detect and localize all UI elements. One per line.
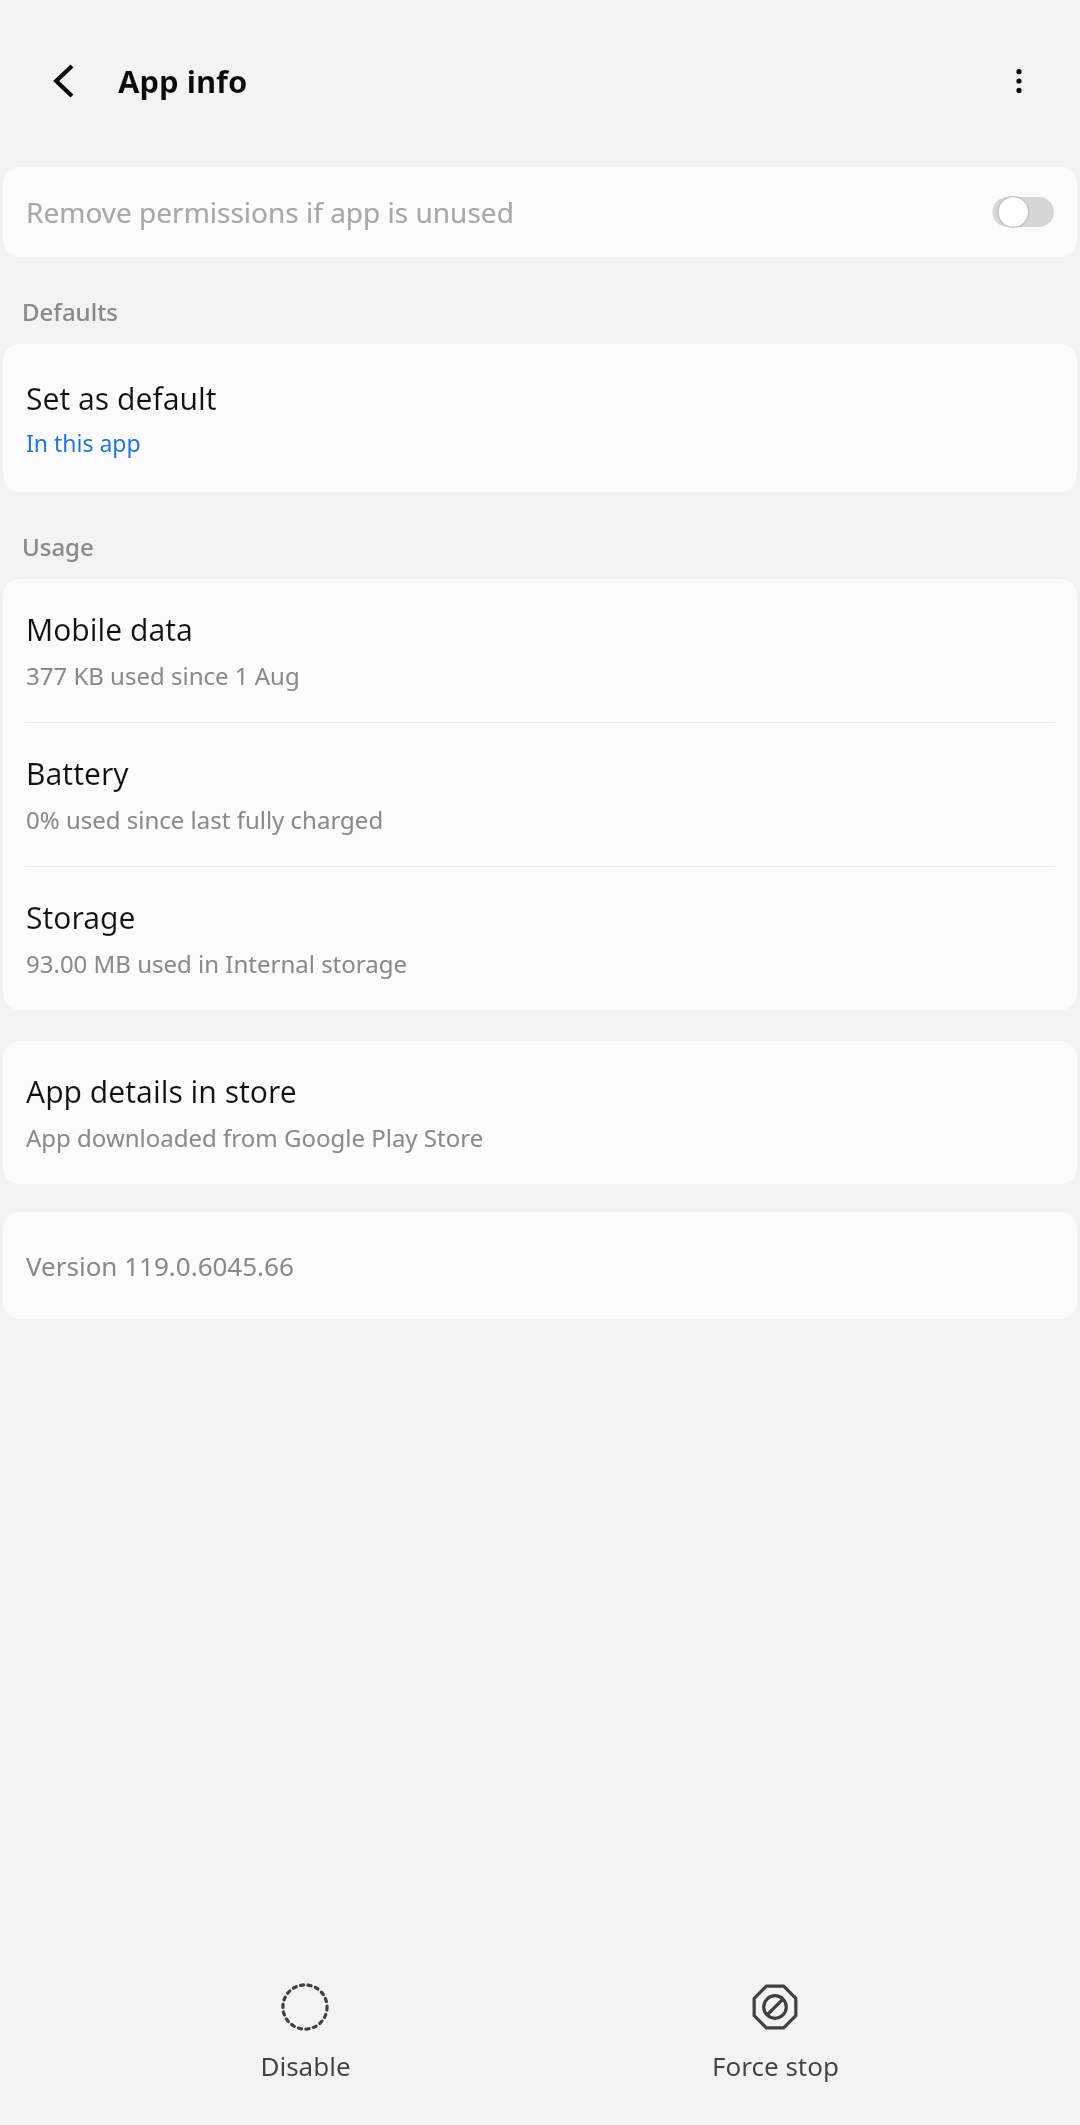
button[interactable]: Disable xyxy=(140,1973,470,2093)
staticText: App details in store xyxy=(26,1071,297,1112)
button[interactable]: More options xyxy=(984,46,1054,116)
button[interactable]: Back xyxy=(34,50,96,112)
button[interactable]: Set as default xyxy=(3,344,1077,492)
button[interactable]: Storage xyxy=(3,867,1077,1010)
staticText: Version 119.0.6045.66 xyxy=(26,1248,294,1283)
staticText: 377 KB used since 1 Aug xyxy=(26,659,300,692)
other: Disable xyxy=(281,1983,329,2031)
staticText: Storage xyxy=(26,897,136,938)
other: Force stop xyxy=(751,1983,799,2031)
button[interactable]: Force stop xyxy=(610,1973,940,2093)
button[interactable]: Mobile data xyxy=(3,579,1077,722)
button[interactable]: Version 119.0.6045.66 xyxy=(3,1212,1077,1319)
button[interactable]: App details in store xyxy=(3,1041,1077,1184)
staticText: Force stop xyxy=(712,2048,839,2083)
button[interactable]: Remove permissions if app is unused xyxy=(3,167,1077,257)
button[interactable]: Battery xyxy=(3,723,1077,866)
staticText: Disable xyxy=(260,2048,351,2083)
staticText: In this app xyxy=(26,427,141,458)
staticText: App info xyxy=(118,60,248,102)
staticText: 93.00 MB used in Internal storage xyxy=(26,947,407,980)
staticText: Mobile data xyxy=(26,609,193,650)
staticText: Set as default xyxy=(26,378,217,419)
staticText: App downloaded from Google Play Store xyxy=(26,1121,484,1154)
staticText: Defaults xyxy=(22,295,118,328)
staticText: 0% used since last fully charged xyxy=(26,803,384,836)
staticText: Battery xyxy=(26,753,129,794)
staticText: Remove permissions if app is unused xyxy=(26,193,978,231)
staticText: Usage xyxy=(22,530,94,563)
